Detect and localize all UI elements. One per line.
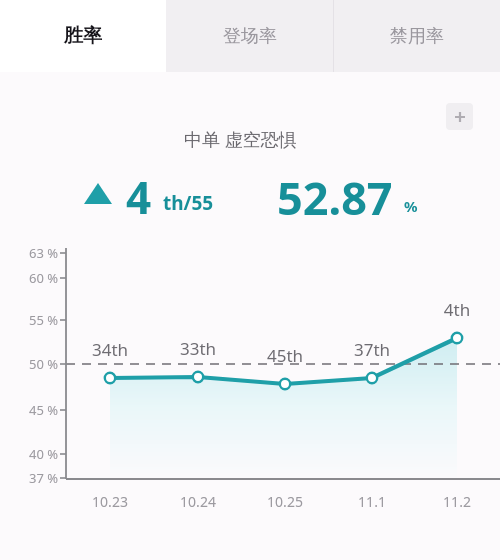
staticText: 登场率 bbox=[223, 25, 277, 48]
staticText: 胜率 bbox=[64, 24, 102, 48]
staticText: 33th bbox=[168, 337, 228, 360]
button[interactable]: 登场率 bbox=[166, 0, 333, 72]
staticText: 60 % bbox=[10, 269, 58, 287]
staticText: 4 bbox=[126, 167, 152, 227]
staticText: 37 % bbox=[10, 469, 58, 487]
button[interactable]: Add bbox=[446, 103, 473, 130]
staticText: 禁用率 bbox=[390, 25, 444, 48]
staticText: 10.24 bbox=[163, 492, 233, 511]
staticText: 52.87 bbox=[277, 167, 393, 228]
staticText: 50 % bbox=[10, 355, 58, 373]
staticText: 11.1 bbox=[337, 492, 407, 511]
staticText: th/55 bbox=[163, 190, 214, 216]
staticText: % bbox=[404, 196, 418, 216]
staticText: 34th bbox=[80, 338, 140, 361]
staticText: 45th bbox=[255, 344, 315, 367]
staticText: 11.2 bbox=[422, 492, 492, 511]
staticText: 37th bbox=[342, 338, 402, 361]
button[interactable]: 禁用率 bbox=[333, 0, 500, 72]
staticText: 45 % bbox=[10, 401, 58, 419]
staticText: 10.25 bbox=[250, 492, 320, 511]
staticText: 10.23 bbox=[75, 492, 145, 511]
staticText: 63 % bbox=[10, 244, 58, 262]
staticText: 4th bbox=[427, 298, 487, 321]
staticText: 55 % bbox=[10, 311, 58, 329]
button[interactable]: 胜率 bbox=[0, 0, 166, 72]
staticText: 中单 虚空恐惧 bbox=[184, 127, 297, 152]
staticText: 40 % bbox=[10, 445, 58, 463]
